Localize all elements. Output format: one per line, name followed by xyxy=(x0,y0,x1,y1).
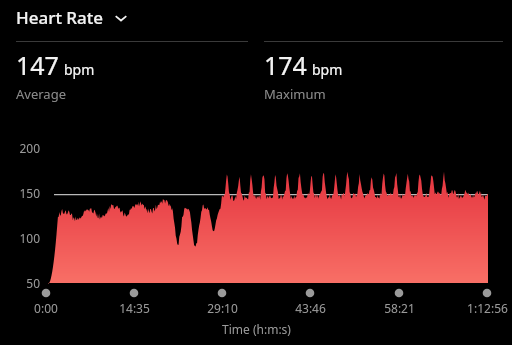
staticText: Average xyxy=(16,85,66,103)
staticText: 150 xyxy=(19,185,40,201)
staticText: 29:10 xyxy=(207,300,238,316)
staticText: Time (h:m:s) xyxy=(222,321,291,337)
staticText: 200 xyxy=(19,140,40,156)
staticText: 0:00 xyxy=(34,300,58,316)
button[interactable]: Heart Rate xyxy=(14,4,130,31)
staticText: 14:35 xyxy=(119,300,150,316)
staticText: 1:12:56 xyxy=(467,300,508,316)
staticText: 100 xyxy=(19,230,40,246)
staticText: 58:21 xyxy=(384,300,415,316)
staticText: 147 xyxy=(16,48,59,82)
other: Change metric xyxy=(114,11,128,25)
staticText: 174 xyxy=(264,48,307,82)
staticText: bpm xyxy=(312,60,343,79)
button[interactable]: 147 xyxy=(14,48,97,103)
staticText: 50 xyxy=(26,275,40,291)
staticText: Heart Rate xyxy=(16,6,104,29)
staticText: bpm xyxy=(64,60,95,79)
button[interactable]: 174 xyxy=(262,48,345,103)
staticText: 43:46 xyxy=(295,300,326,316)
staticText: Maximum xyxy=(264,85,326,103)
